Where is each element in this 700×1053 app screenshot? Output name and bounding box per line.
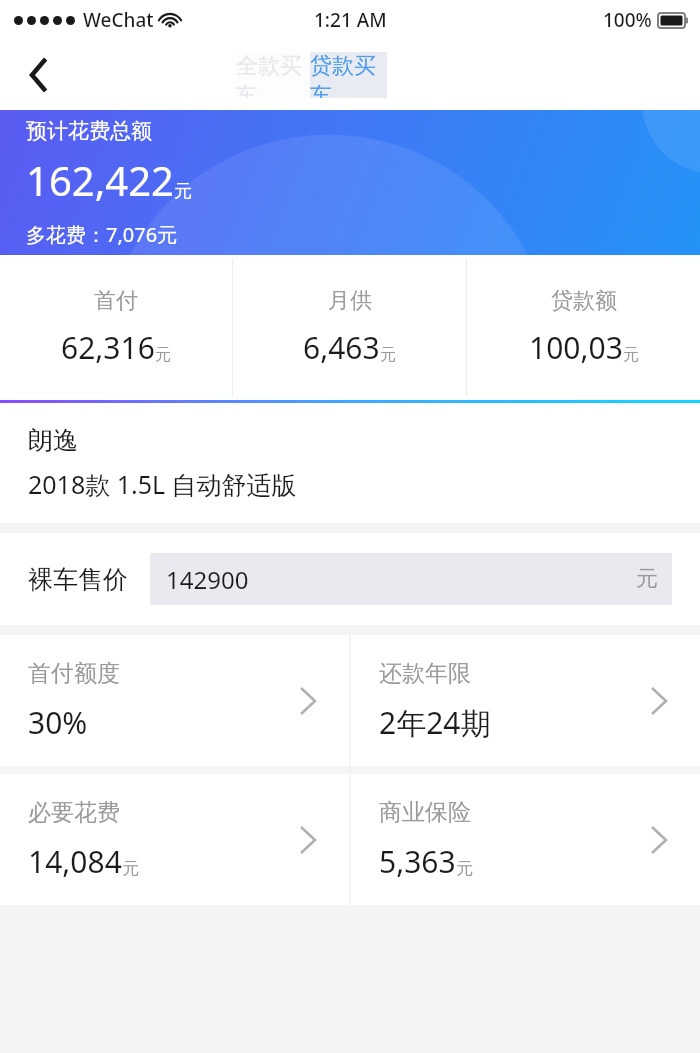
staticText: 元 bbox=[623, 345, 639, 365]
button[interactable]: 月供 bbox=[233, 255, 466, 400]
staticText: 5,363 bbox=[379, 841, 456, 882]
button[interactable]: 必要花费 bbox=[0, 774, 349, 905]
staticText: 裸车售价 bbox=[28, 564, 128, 595]
button[interactable]: 首付额度 bbox=[0, 635, 349, 766]
staticText: 首付 bbox=[94, 287, 138, 315]
staticText: 100,03 bbox=[529, 327, 623, 368]
staticText: 商业保险 bbox=[379, 798, 471, 827]
staticText: 元 bbox=[174, 180, 192, 203]
staticText: 朗逸 bbox=[28, 425, 78, 456]
staticText: 预计花费总额 bbox=[26, 118, 152, 144]
staticText: 1:21 AM bbox=[314, 7, 387, 33]
staticText: WeChat bbox=[83, 7, 154, 33]
staticText: 贷款额 bbox=[551, 287, 617, 315]
staticText: 必要花费 bbox=[28, 798, 120, 827]
staticText: 元 bbox=[456, 858, 473, 879]
staticText: 2018款 1.5L 自动舒适版 bbox=[28, 467, 297, 501]
staticText: 62,316 bbox=[61, 327, 155, 368]
button[interactable]: 贷款买车 bbox=[310, 52, 387, 98]
staticText: 月供 bbox=[328, 287, 372, 315]
button[interactable]: 商业保险 bbox=[351, 774, 700, 905]
staticText: 元 bbox=[636, 565, 658, 593]
staticText: 多花费：7,076元 bbox=[26, 221, 178, 248]
staticText: 还款年限 bbox=[379, 659, 471, 688]
staticText: 首付额度 bbox=[28, 659, 120, 688]
staticText: 100% bbox=[603, 7, 652, 33]
staticText: 30% bbox=[28, 702, 88, 743]
staticText: 元 bbox=[380, 345, 396, 365]
staticText: 2年24期 bbox=[379, 702, 491, 743]
staticText: 元 bbox=[122, 858, 139, 879]
staticText: 14,084 bbox=[28, 841, 122, 882]
button[interactable]: 裸车售价 bbox=[28, 533, 672, 625]
staticText: 6,463 bbox=[303, 327, 380, 368]
staticText: 元 bbox=[155, 345, 171, 365]
staticText: 全款买车 bbox=[236, 52, 310, 98]
button[interactable]: 全款买车 bbox=[236, 52, 310, 98]
button[interactable]: 贷款额 bbox=[467, 255, 700, 400]
staticText: 142900 bbox=[166, 563, 249, 596]
staticText: 贷款买车 bbox=[310, 52, 387, 98]
button[interactable]: 首付 bbox=[0, 255, 232, 400]
button[interactable]: 还款年限 bbox=[351, 635, 700, 766]
button[interactable]: Back bbox=[18, 53, 62, 97]
staticText: 162,422 bbox=[26, 153, 174, 207]
